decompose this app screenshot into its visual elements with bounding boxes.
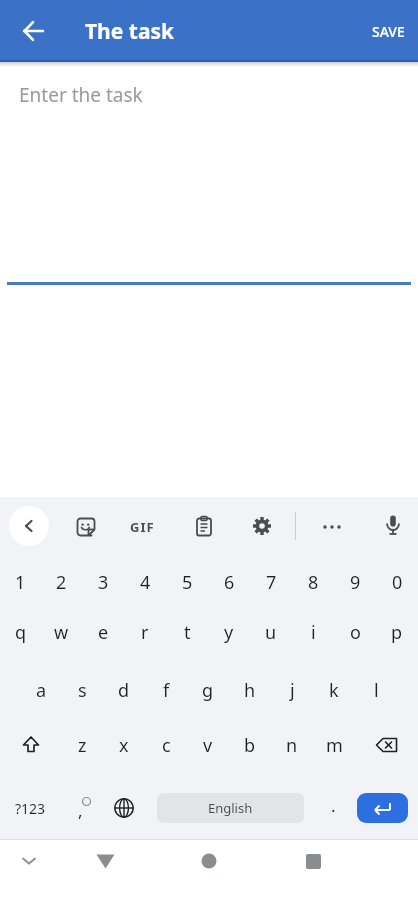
staticText: c <box>162 733 171 758</box>
staticText: 8 <box>308 570 319 595</box>
button[interactable] <box>355 723 418 767</box>
staticText: ?123 <box>15 799 46 818</box>
button[interactable]: Enter the task <box>0 70 418 285</box>
staticText: 6 <box>224 570 235 595</box>
staticText: 3 <box>98 570 109 595</box>
button[interactable]: , <box>66 785 98 831</box>
staticText: i <box>311 620 316 645</box>
button[interactable]: 3 <box>82 560 124 604</box>
staticText: t <box>184 620 191 645</box>
staticText: q <box>15 620 27 645</box>
staticText: v <box>203 733 213 758</box>
staticText: u <box>265 620 277 645</box>
button[interactable]: p <box>376 610 418 654</box>
staticText: y <box>224 620 234 645</box>
button[interactable]: s <box>62 668 103 712</box>
staticText: 5 <box>182 570 193 595</box>
staticText: w <box>54 620 69 645</box>
button[interactable] <box>382 514 404 536</box>
button[interactable]: n <box>271 723 313 767</box>
button[interactable]: z <box>62 723 103 767</box>
staticText: x <box>119 733 129 758</box>
button[interactable]: 6 <box>208 560 250 604</box>
button[interactable]: 1 <box>0 560 41 604</box>
staticText: f <box>163 678 170 703</box>
button[interactable]: i <box>292 610 334 654</box>
button[interactable]: l <box>355 668 397 712</box>
staticText: k <box>329 678 339 703</box>
button[interactable]: SAVE <box>372 22 405 41</box>
button[interactable]: u <box>250 610 292 654</box>
button[interactable]: 0 <box>376 560 418 604</box>
button[interactable]: g <box>187 668 229 712</box>
staticText: The task <box>85 17 175 46</box>
button[interactable]: j <box>271 668 313 712</box>
staticText: m <box>326 733 343 758</box>
staticText: a <box>36 678 47 703</box>
staticText: g <box>202 678 214 703</box>
button[interactable]: q <box>0 610 41 654</box>
button[interactable]: e <box>82 610 124 654</box>
button[interactable] <box>193 515 215 537</box>
button[interactable] <box>195 848 223 874</box>
button[interactable] <box>75 516 97 538</box>
staticText: e <box>98 620 109 645</box>
button[interactable]: r <box>124 610 166 654</box>
button[interactable]: 4 <box>124 560 166 604</box>
button[interactable]: 2 <box>41 560 82 604</box>
button[interactable]: m <box>313 723 355 767</box>
staticText: z <box>78 733 87 758</box>
staticText: p <box>391 620 403 645</box>
button[interactable]: 9 <box>334 560 376 604</box>
button[interactable]: English <box>157 793 304 823</box>
button[interactable]: a <box>21 668 62 712</box>
staticText: Enter the task <box>19 82 143 108</box>
button[interactable]: x <box>103 723 145 767</box>
button[interactable] <box>106 785 142 831</box>
button[interactable]: w <box>41 610 82 654</box>
button[interactable]: 7 <box>250 560 292 604</box>
staticText: 2 <box>56 570 67 595</box>
button[interactable]: f <box>145 668 187 712</box>
button[interactable]: y <box>208 610 250 654</box>
button[interactable]: h <box>229 668 271 712</box>
button[interactable]: o <box>334 610 376 654</box>
button[interactable]: b <box>229 723 271 767</box>
button[interactable]: c <box>145 723 187 767</box>
staticText: 0 <box>392 570 403 595</box>
staticText: j <box>290 678 295 703</box>
button[interactable] <box>14 20 54 42</box>
button[interactable] <box>318 516 346 538</box>
button[interactable]: d <box>103 668 145 712</box>
button[interactable] <box>357 793 408 823</box>
staticText: 1 <box>15 570 26 595</box>
staticText: GIF <box>130 518 155 536</box>
button[interactable] <box>0 723 62 767</box>
button[interactable] <box>299 848 327 874</box>
button[interactable]: 5 <box>166 560 208 604</box>
staticText: r <box>141 620 149 645</box>
button[interactable] <box>251 515 273 537</box>
staticText: s <box>78 678 87 703</box>
button[interactable]: v <box>187 723 229 767</box>
button[interactable] <box>15 849 43 873</box>
staticText: , <box>78 799 83 822</box>
staticText: l <box>374 678 379 703</box>
button[interactable]: t <box>166 610 208 654</box>
staticText: English <box>208 799 253 817</box>
button[interactable]: GIF <box>126 516 158 538</box>
staticText: o <box>350 620 361 645</box>
button[interactable]: k <box>313 668 355 712</box>
staticText: d <box>118 678 130 703</box>
button[interactable] <box>9 506 49 546</box>
staticText: b <box>244 733 256 758</box>
staticText: SAVE <box>372 22 405 41</box>
button[interactable]: 8 <box>292 560 334 604</box>
button[interactable]: ?123 <box>4 785 56 831</box>
button[interactable]: . <box>318 785 348 831</box>
staticText: n <box>286 733 298 758</box>
staticText: 9 <box>350 570 361 595</box>
staticText: 4 <box>140 570 151 595</box>
button[interactable] <box>91 848 119 874</box>
staticText: 7 <box>266 570 277 595</box>
